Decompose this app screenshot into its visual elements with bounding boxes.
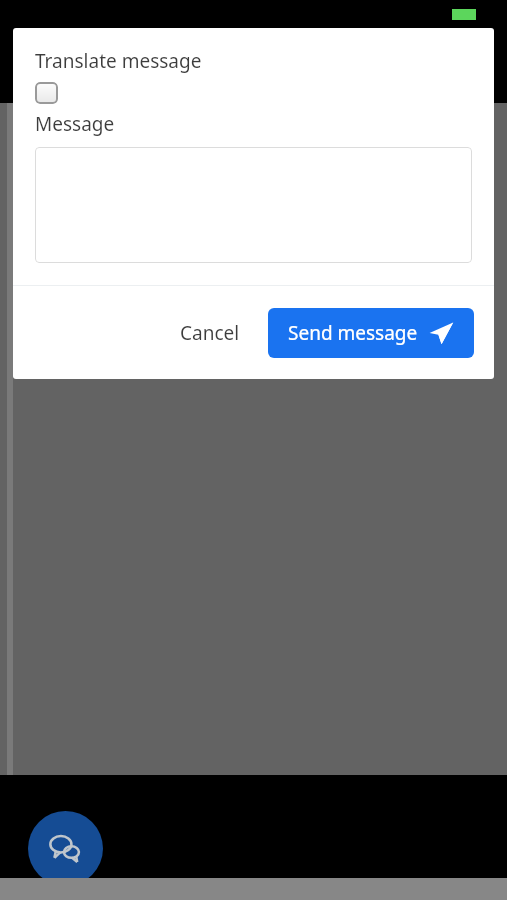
button[interactable]: Send message (268, 308, 474, 358)
button[interactable]: Cancel (166, 310, 254, 356)
button[interactable]: Translate message checkbox (35, 82, 58, 104)
button[interactable]: Open chat (28, 811, 103, 886)
staticText: Cancel (180, 320, 240, 346)
button[interactable] (35, 147, 472, 263)
staticText: Message (35, 111, 115, 137)
staticText: Translate message (35, 48, 202, 74)
staticText: Send message (288, 320, 418, 346)
